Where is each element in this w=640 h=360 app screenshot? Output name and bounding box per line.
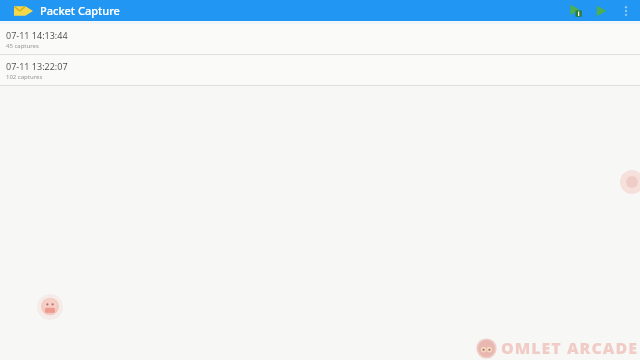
button[interactable]: Start capture with filter	[562, 0, 588, 21]
button[interactable]: 07-11 13:22:07	[0, 55, 640, 86]
staticText: OMLET ARCADE	[501, 337, 638, 359]
staticText: 07-11 13:22:07	[6, 60, 68, 72]
staticText: 102 captures	[6, 73, 43, 81]
button[interactable]: Start capture	[588, 0, 614, 21]
staticText: 07-11 14:13:44	[6, 29, 68, 41]
staticText: 45 captures	[6, 42, 39, 50]
button[interactable]: More options	[614, 0, 638, 21]
button[interactable]: 07-11 14:13:44	[0, 24, 640, 55]
staticText: Packet Capture	[40, 3, 120, 18]
